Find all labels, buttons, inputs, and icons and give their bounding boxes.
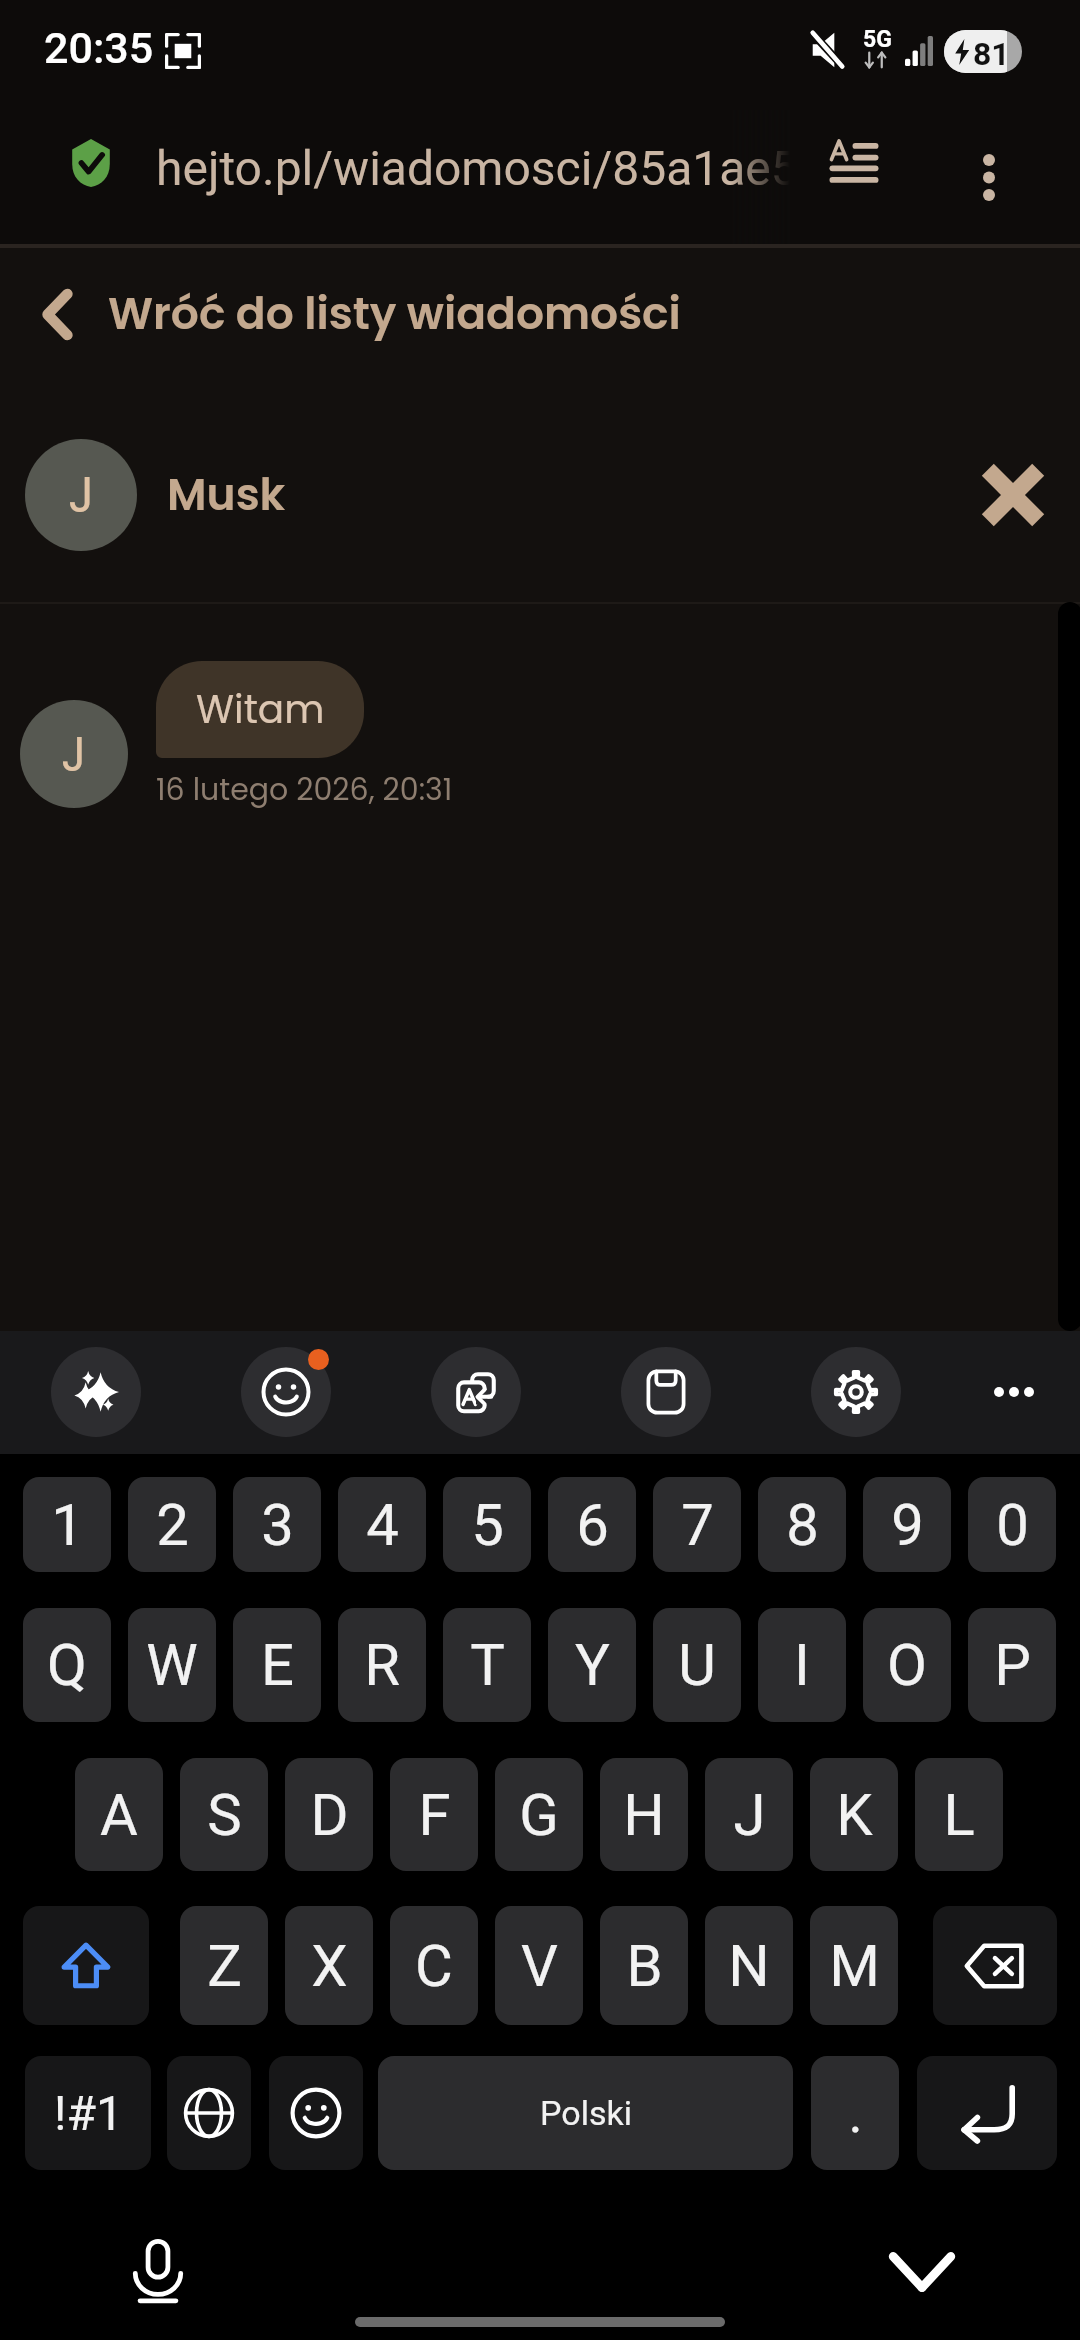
button[interactable]: W	[128, 1608, 216, 1722]
staticText: M	[829, 1932, 880, 2000]
staticText: Z	[207, 1932, 242, 2000]
button[interactable]: I	[758, 1608, 846, 1722]
button[interactable]: 1	[23, 1477, 111, 1572]
staticText: Polski	[540, 2093, 632, 2133]
button[interactable]: Emoji	[241, 1347, 331, 1437]
button[interactable]: Shift	[23, 1906, 149, 2025]
button[interactable]: !#1	[25, 2056, 151, 2170]
staticText: 20:35	[44, 23, 154, 73]
button[interactable]: U	[653, 1608, 741, 1722]
button[interactable]: S	[180, 1758, 268, 1871]
staticText: Musk	[167, 464, 286, 526]
button[interactable]: 6	[548, 1477, 636, 1572]
staticText: X	[311, 1932, 348, 2000]
staticText: J	[61, 721, 87, 788]
staticText: B	[626, 1932, 663, 2000]
staticText: !#1	[54, 2085, 123, 2141]
button[interactable]: Emoji	[269, 2056, 363, 2170]
button[interactable]: O	[863, 1608, 951, 1722]
button[interactable]: Witam	[156, 661, 364, 758]
button[interactable]: More options	[963, 1356, 1065, 1428]
button[interactable]: 2	[128, 1477, 216, 1572]
staticText: R	[364, 1631, 400, 1699]
button[interactable]: 7	[653, 1477, 741, 1572]
button[interactable]: Smart compose	[51, 1347, 141, 1437]
button[interactable]: Translate	[431, 1347, 521, 1437]
staticText: A	[100, 1781, 138, 1849]
button[interactable]: Hide keyboard	[890, 2246, 954, 2298]
button[interactable]: T	[443, 1608, 531, 1722]
staticText: 9	[891, 1491, 924, 1559]
button[interactable]: J	[705, 1758, 793, 1871]
button[interactable]: Polski	[378, 2056, 793, 2170]
button[interactable]: .	[811, 2056, 899, 2170]
staticText: N	[728, 1932, 770, 2000]
staticText: 5	[471, 1491, 504, 1559]
button[interactable]: 9	[863, 1477, 951, 1572]
staticText: 81	[973, 35, 1010, 73]
button[interactable]: 8	[758, 1477, 846, 1572]
staticText: H	[623, 1781, 665, 1849]
button[interactable]: Backspace	[933, 1906, 1057, 2025]
staticText: 8	[786, 1491, 819, 1559]
staticText: 5G	[863, 26, 892, 53]
button[interactable]: 0	[968, 1477, 1056, 1572]
button[interactable]: Settings	[811, 1347, 901, 1437]
staticText: hejto.pl/wiadomosci/85a1ae5	[156, 140, 790, 196]
staticText: 3	[261, 1491, 294, 1559]
button[interactable]: A	[75, 1758, 163, 1871]
staticText: 0	[996, 1491, 1029, 1559]
staticText: I	[794, 1631, 810, 1699]
staticText: E	[261, 1631, 294, 1699]
staticText: 16 lutego 2026, 20:31	[156, 769, 453, 811]
staticText: F	[418, 1781, 451, 1849]
staticText: S	[207, 1781, 242, 1849]
button[interactable]: Q	[23, 1608, 111, 1722]
staticText: J	[68, 460, 95, 530]
button[interactable]: Wróć do listy wiadomości	[0, 254, 1080, 374]
staticText: Witam	[196, 682, 325, 737]
staticText: 6	[576, 1491, 609, 1559]
button[interactable]: K	[810, 1758, 898, 1871]
button[interactable]: 4	[338, 1477, 426, 1572]
button[interactable]: D	[285, 1758, 373, 1871]
staticText: P	[994, 1631, 1031, 1699]
button[interactable]: Y	[548, 1608, 636, 1722]
button[interactable]: 3	[233, 1477, 321, 1572]
staticText: 7	[681, 1491, 714, 1559]
button[interactable]: Clipboard	[621, 1347, 711, 1437]
button[interactable]: C	[390, 1906, 478, 2025]
staticText: 1	[51, 1491, 84, 1559]
staticText: G	[519, 1781, 559, 1849]
staticText: W	[146, 1631, 198, 1699]
button[interactable]: H	[600, 1758, 688, 1871]
button[interactable]: Voice input	[126, 2240, 190, 2304]
button[interactable]: F	[390, 1758, 478, 1871]
staticText: Q	[47, 1631, 87, 1699]
button[interactable]: G	[495, 1758, 583, 1871]
staticText: V	[521, 1932, 558, 2000]
button[interactable]: B	[600, 1906, 688, 2025]
button[interactable]: P	[968, 1608, 1056, 1722]
button[interactable]: N	[705, 1906, 793, 2025]
staticText: 2	[156, 1491, 189, 1559]
staticText: L	[943, 1781, 975, 1849]
staticText: Wróć do listy wiadomości	[108, 283, 681, 345]
staticText: J	[733, 1781, 766, 1849]
staticText: T	[470, 1631, 505, 1699]
staticText: .	[848, 2082, 863, 2145]
button[interactable]: V	[495, 1906, 583, 2025]
button[interactable]: R	[338, 1608, 426, 1722]
button[interactable]: E	[233, 1608, 321, 1722]
staticText: U	[678, 1631, 716, 1699]
button[interactable]: Z	[180, 1906, 268, 2025]
button[interactable]: Enter	[917, 2056, 1057, 2170]
button[interactable]: 5	[443, 1477, 531, 1572]
button[interactable]: Close conversation	[969, 451, 1057, 539]
button[interactable]: Change language	[167, 2056, 251, 2170]
button[interactable]: M	[810, 1906, 898, 2025]
button[interactable]: L	[915, 1758, 1003, 1871]
button[interactable]: X	[285, 1906, 373, 2025]
staticText: Y	[575, 1631, 610, 1699]
button[interactable]: More options	[943, 117, 1035, 237]
